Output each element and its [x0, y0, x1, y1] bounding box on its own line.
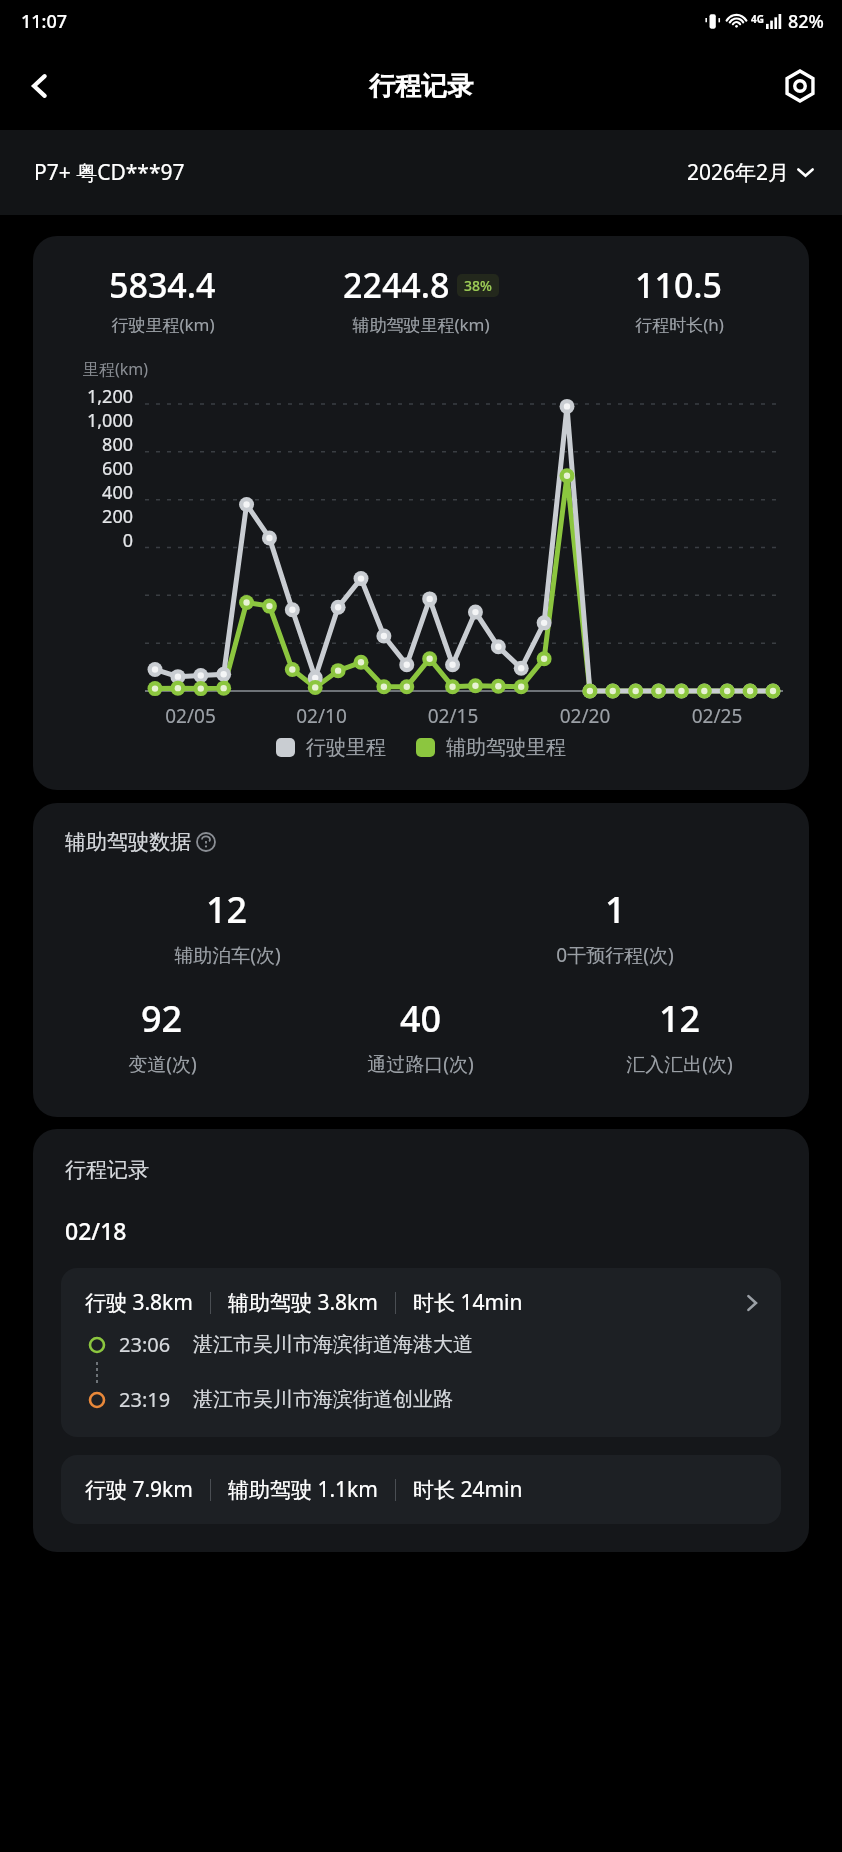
- staticText: 时长 24min: [413, 1475, 523, 1504]
- staticText: 92: [141, 994, 183, 1043]
- staticText: 辅助泊车(次): [174, 942, 281, 968]
- staticText: 行驶 7.9km: [85, 1475, 193, 1504]
- staticText: 时长 14min: [413, 1288, 523, 1317]
- staticText: 里程(km): [83, 358, 149, 380]
- staticText: 2026年2月: [687, 158, 790, 187]
- staticText: 02/18: [65, 1215, 127, 1246]
- staticText: 11:07: [21, 9, 68, 34]
- staticText: 行程记录: [65, 1157, 149, 1183]
- staticText: 23:06: [119, 1331, 171, 1358]
- staticText: 行驶里程: [306, 735, 386, 760]
- staticText: 4G: [751, 12, 764, 26]
- staticText: 汇入汇出(次): [626, 1051, 733, 1077]
- staticText: 1: [605, 885, 626, 934]
- staticText: 38%: [464, 276, 492, 295]
- staticText: 02/20: [519, 703, 651, 729]
- staticText: 行驶 3.8km: [85, 1288, 193, 1317]
- staticText: 0干预行程(次): [556, 942, 674, 968]
- staticText: 湛江市吴川市海滨街道海港大道: [193, 1332, 473, 1357]
- staticText: 02/25: [651, 703, 783, 729]
- staticText: 通过路口(次): [367, 1051, 474, 1077]
- staticText: 800: [33, 432, 133, 457]
- staticText: 辅助驾驶里程: [446, 735, 566, 760]
- staticText: 辅助驾驶 3.8km: [228, 1288, 378, 1317]
- staticText: 行程记录: [369, 70, 473, 103]
- button[interactable]: 行驶 7.9km: [61, 1455, 781, 1524]
- staticText: 12: [206, 885, 248, 934]
- staticText: 40: [400, 994, 442, 1043]
- staticText: P7+ 粤CD***97: [34, 158, 185, 187]
- button[interactable]: 2026年2月: [687, 158, 814, 187]
- staticText: 600: [33, 456, 133, 481]
- staticText: 12: [659, 994, 701, 1043]
- staticText: 变道(次): [128, 1051, 197, 1077]
- staticText: 1,200: [33, 384, 133, 409]
- staticText: 辅助驾驶 1.1km: [228, 1475, 378, 1504]
- staticText: 行驶里程(km): [111, 313, 215, 336]
- staticText: 5834.4: [109, 262, 216, 308]
- button[interactable]: 辅助驾驶数据: [33, 803, 809, 1117]
- staticText: 辅助驾驶数据: [65, 829, 191, 855]
- staticText: 湛江市吴川市海滨街道创业路: [193, 1387, 453, 1412]
- staticText: 1,000: [33, 408, 133, 433]
- staticText: 400: [33, 480, 133, 505]
- staticText: 02/05: [125, 703, 256, 729]
- staticText: 200: [33, 504, 133, 529]
- staticText: 110.5: [635, 262, 723, 308]
- button[interactable]: Back: [12, 58, 68, 114]
- staticText: 82%: [788, 9, 824, 34]
- button[interactable]: Settings: [772, 58, 828, 114]
- staticText: 02/10: [256, 703, 387, 729]
- staticText: 行程时长(h): [635, 313, 724, 336]
- staticText: 辅助驾驶里程(km): [352, 313, 490, 336]
- button[interactable]: 5834.4: [33, 236, 809, 790]
- staticText: 2244.8: [343, 262, 450, 308]
- button[interactable]: 行驶 3.8km: [61, 1268, 781, 1437]
- staticText: 23:19: [119, 1386, 171, 1413]
- staticText: 02/15: [387, 703, 519, 729]
- staticText: 0: [33, 528, 133, 553]
